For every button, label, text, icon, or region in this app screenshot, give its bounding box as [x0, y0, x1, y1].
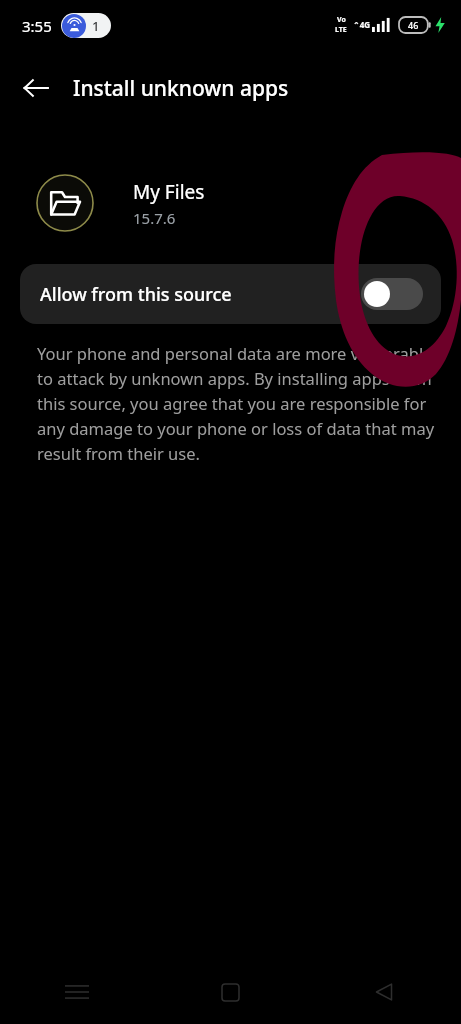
staticText: 1 — [92, 17, 100, 35]
button[interactable]: Home — [153, 960, 307, 1024]
staticText: 46 — [408, 19, 419, 31]
staticText: 15.7.6 — [133, 208, 176, 228]
button[interactable]: Recent apps — [0, 960, 153, 1024]
button[interactable]: Back — [307, 960, 461, 1024]
staticText: My Files — [133, 179, 205, 205]
button[interactable]: My Files — [0, 166, 461, 240]
button[interactable]: Back — [10, 62, 62, 114]
other: Allow from this source toggle — [361, 278, 423, 310]
staticText: Vo — [337, 15, 346, 25]
staticText: ⌃4G — [353, 19, 371, 30]
staticText: Allow from this source — [40, 282, 232, 307]
staticText: 3:55 — [22, 16, 52, 36]
staticText: LTE — [335, 25, 347, 35]
button[interactable]: Allow from this source — [20, 264, 441, 324]
staticText: Your phone and personal data are more vu… — [37, 342, 439, 464]
staticText: Install unknown apps — [73, 74, 289, 103]
